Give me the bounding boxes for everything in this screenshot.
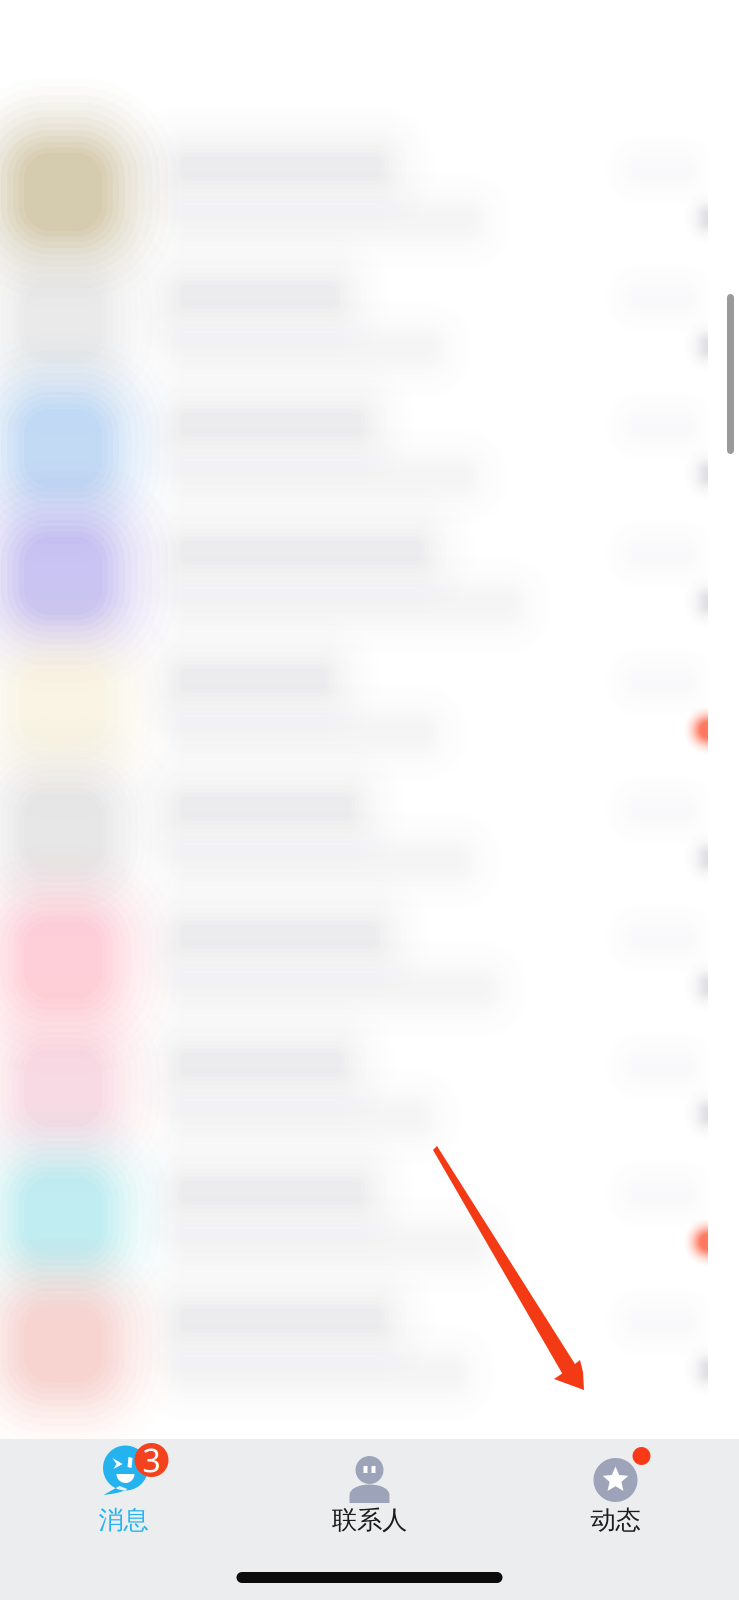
button[interactable]: 联系人	[246, 1439, 492, 1575]
staticText: 动态	[590, 1504, 640, 1535]
button[interactable]: 动态	[492, 1439, 738, 1575]
button[interactable]	[0, 768, 708, 896]
button[interactable]	[0, 128, 708, 256]
button[interactable]	[0, 896, 708, 1024]
staticText: 联系人	[332, 1504, 407, 1535]
staticText: 消息	[98, 1504, 148, 1535]
staticText: 3	[142, 1439, 160, 1481]
button[interactable]	[0, 1280, 708, 1408]
button[interactable]	[0, 1152, 708, 1280]
button[interactable]	[0, 256, 708, 384]
button[interactable]	[0, 1024, 708, 1152]
button[interactable]: 3	[0, 1439, 246, 1575]
button[interactable]	[0, 512, 708, 640]
button[interactable]	[0, 640, 708, 768]
button[interactable]	[0, 384, 708, 512]
